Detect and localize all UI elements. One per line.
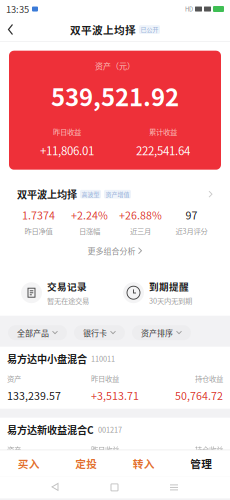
staticText: 昨日净值	[24, 226, 52, 236]
button[interactable]: 银行卡	[74, 325, 125, 340]
staticText: 近三月	[130, 226, 151, 236]
staticText: 昨日收益	[53, 126, 81, 137]
staticText: +2.24%	[71, 207, 108, 223]
button[interactable]: 管理	[172, 450, 230, 476]
staticText: 资产增值	[105, 190, 129, 198]
staticText: 易方达中小盘混合	[7, 351, 87, 366]
staticText: 暂无在途交易	[47, 295, 89, 306]
staticText: 到期提醒	[149, 279, 189, 293]
staticText: 双平波上均择	[70, 22, 136, 37]
staticText: 全部产品	[17, 327, 49, 338]
staticText: 资产	[7, 373, 21, 384]
staticText: 13:35	[6, 2, 29, 16]
staticText: 买入	[18, 456, 40, 471]
staticText: 已公开	[140, 25, 158, 34]
staticText: 资产	[7, 444, 21, 455]
staticText: +26.88%	[119, 207, 162, 223]
staticText: 双平波上均择	[17, 187, 77, 201]
staticText: 001217	[98, 424, 122, 435]
staticText: 日涨幅	[79, 226, 100, 236]
staticText: 昨日收益	[91, 373, 119, 384]
staticText: 累计收益	[149, 126, 177, 137]
staticText: 133,239.57	[7, 388, 61, 403]
staticText: 转入	[133, 456, 155, 471]
staticText: +11,806.01	[40, 142, 94, 158]
staticText: 昨日收益	[91, 444, 119, 455]
staticText: 539,521.92	[51, 78, 179, 113]
staticText: 定投	[75, 456, 97, 471]
staticText: 高波型	[81, 190, 99, 198]
staticText: 21,334.10	[175, 459, 223, 474]
staticText: 1.7374	[22, 207, 55, 223]
staticText: 管理	[190, 456, 212, 471]
staticText: 银行卡	[83, 327, 107, 338]
staticText: 97	[185, 207, 197, 223]
button[interactable]: 转入	[115, 450, 172, 476]
staticText: +3,513.71	[91, 388, 139, 403]
staticText: 近3月评分	[175, 226, 207, 236]
staticText: 222,541.64	[136, 142, 190, 158]
staticText: 50,764.72	[175, 388, 223, 403]
button[interactable]: 资产排序	[132, 325, 191, 340]
staticText: HD	[185, 5, 193, 13]
staticText: 持仓收益	[195, 444, 223, 455]
button[interactable]: Back	[5, 19, 25, 39]
staticText: 30天内无到期	[149, 295, 192, 306]
button[interactable]: 买入	[0, 450, 57, 476]
staticText: 更多组合分析	[87, 245, 135, 256]
staticText: 交易记录	[47, 279, 87, 293]
button[interactable]: 易方达新收益混合C	[0, 418, 230, 480]
staticText: 资产排序	[141, 327, 173, 338]
staticText: 110011	[91, 353, 115, 364]
button[interactable]: 到期提醒	[115, 274, 221, 312]
staticText: 易方达新收益混合C	[7, 422, 94, 437]
button[interactable]: 交易记录	[9, 274, 115, 312]
staticText: 持仓收益	[195, 373, 223, 384]
staticText: 90,112.03	[7, 459, 55, 474]
staticText: 资产（元）	[95, 60, 135, 71]
button[interactable]: 更多组合分析	[9, 244, 221, 257]
button[interactable]: 易方达中小盘混合	[0, 347, 230, 409]
button[interactable]: 双平波上均择	[9, 188, 221, 200]
staticText: +1,203.55	[91, 459, 139, 474]
button[interactable]: 全部产品	[8, 325, 67, 340]
button[interactable]: 定投	[57, 450, 115, 476]
